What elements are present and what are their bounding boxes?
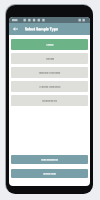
button[interactable]: UPLOAD FILES	[11, 169, 88, 178]
staticText: Telephone conversation	[38, 71, 60, 74]
button[interactable]: Self-defined size	[11, 95, 88, 106]
button[interactable]: Montage	[11, 53, 88, 64]
staticText: UPLOAD FILES	[43, 173, 56, 176]
button[interactable]: In-person conversation	[11, 81, 88, 92]
staticText: Self-defined size	[42, 99, 57, 102]
staticText: Montage	[46, 58, 54, 61]
staticText: In-person conversation	[39, 86, 60, 89]
staticText: Healthy	[46, 44, 53, 47]
staticText: Healthy	[46, 43, 53, 46]
staticText: UPLOAD FILES	[43, 172, 56, 175]
staticText: Montage	[46, 57, 54, 60]
staticText: START RECORDING	[41, 159, 58, 162]
staticText: Telephone conversation	[38, 72, 60, 75]
button[interactable]: Healthy	[11, 39, 88, 50]
button[interactable]: Telephone conversation	[11, 67, 88, 78]
staticText: Self-defined size	[42, 100, 57, 103]
button[interactable]: START RECORDING	[11, 155, 88, 164]
staticText: START RECORDING	[41, 158, 58, 161]
button[interactable]: Back	[9, 23, 22, 35]
staticText: In-person conversation	[39, 85, 60, 88]
staticText: Select Sample Type	[25, 26, 58, 32]
staticText: Select Sample Type	[25, 27, 58, 33]
